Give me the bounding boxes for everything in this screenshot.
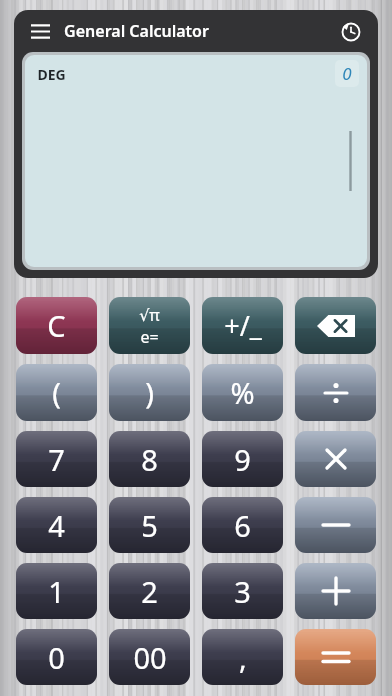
button[interactable]: ( (16, 364, 97, 421)
staticText: ( (52, 373, 61, 412)
staticText: General Calculator (64, 20, 209, 42)
staticText: ) (145, 373, 154, 412)
button[interactable]: 00 (109, 629, 190, 685)
staticText: 3 (234, 572, 251, 611)
button[interactable]: 0 (16, 629, 97, 685)
button[interactable]: % (202, 364, 283, 421)
button[interactable]: Equals (295, 629, 376, 685)
staticText: 5 (141, 506, 158, 545)
staticText: 7 (48, 440, 65, 479)
button[interactable]: 9 (202, 431, 283, 487)
staticText: 2 (141, 572, 158, 611)
staticText: 4 (48, 506, 65, 545)
button[interactable]: 4 (16, 497, 97, 553)
button[interactable]: 5 (109, 497, 190, 553)
button[interactable]: Functions (109, 297, 190, 354)
staticText: 8 (141, 440, 158, 479)
button[interactable]: DEG (25, 55, 367, 267)
button[interactable]: 6 (202, 497, 283, 553)
button[interactable]: 7 (16, 431, 97, 487)
button[interactable]: Backspace (295, 297, 376, 354)
button[interactable]: 2 (109, 563, 190, 619)
staticText: +/_ (224, 307, 262, 344)
staticText: 9 (234, 440, 251, 479)
button[interactable]: 3 (202, 563, 283, 619)
staticText: DEG (37, 65, 66, 84)
button[interactable]: 8 (109, 431, 190, 487)
staticText: % (230, 373, 255, 412)
button[interactable]: Minus (295, 497, 376, 553)
button[interactable]: Multiply (295, 431, 376, 487)
button[interactable]: Divide (295, 364, 376, 421)
button[interactable]: ) (109, 364, 190, 421)
button[interactable]: C (16, 297, 97, 354)
button[interactable]: History (334, 14, 368, 48)
button[interactable]: +/_ (202, 297, 283, 354)
button[interactable]: 1 (16, 563, 97, 619)
staticText: √π (139, 304, 160, 326)
staticText: 0 (48, 638, 65, 677)
button[interactable]: Menu (22, 13, 58, 49)
staticText: 00 (133, 638, 167, 677)
staticText: C (47, 306, 66, 345)
staticText: , (239, 638, 247, 677)
button[interactable]: , (202, 629, 283, 685)
button[interactable]: Plus (295, 563, 376, 619)
staticText: 1 (48, 572, 65, 611)
staticText: 6 (234, 506, 251, 545)
staticText: 0 (342, 62, 352, 85)
staticText: e= (140, 326, 159, 348)
